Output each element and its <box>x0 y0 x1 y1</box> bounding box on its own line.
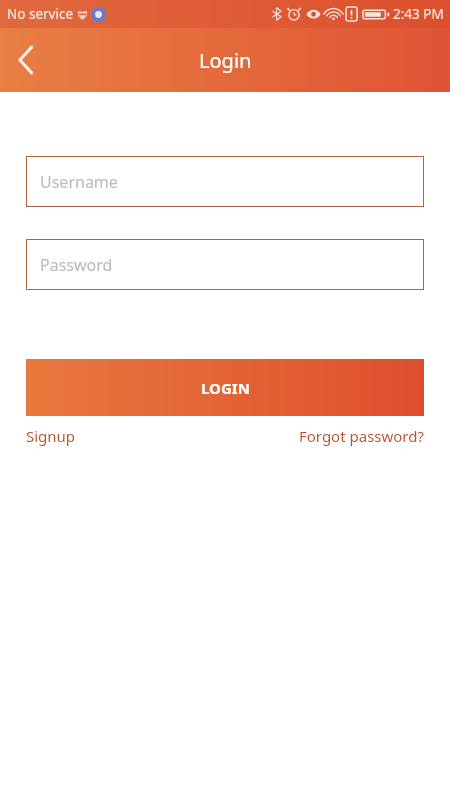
staticText: No service <box>7 5 74 23</box>
button[interactable]: Username <box>26 156 424 207</box>
staticText: Username <box>40 171 118 193</box>
button[interactable]: Signup <box>26 426 76 446</box>
staticText: Signup <box>26 426 76 446</box>
button[interactable]: Password <box>26 239 424 290</box>
button[interactable]: Forgot password? <box>298 426 424 446</box>
button[interactable]: LOGIN <box>26 359 424 416</box>
staticText: Forgot password? <box>298 426 424 446</box>
button[interactable]: Back <box>0 34 52 86</box>
staticText: 2:43 PM <box>393 5 444 23</box>
staticText: LOGIN <box>201 378 250 398</box>
staticText: Login <box>199 47 252 74</box>
staticText: Password <box>40 254 113 276</box>
